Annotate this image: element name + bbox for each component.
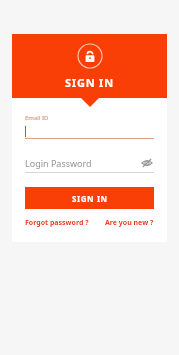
staticText: Login Password <box>25 157 140 169</box>
button[interactable]: Are you new ? <box>105 218 154 228</box>
staticText: Are you new ? <box>105 218 154 228</box>
button[interactable]: SIGN IN <box>25 187 154 209</box>
staticText: Forgot password ? <box>25 218 89 228</box>
staticText: Email ID <box>25 114 49 122</box>
button[interactable] <box>25 125 154 138</box>
button[interactable]: Login Password <box>25 155 154 170</box>
staticText: SIGN IN <box>72 193 108 204</box>
button[interactable]: Forgot password ? <box>25 218 89 228</box>
staticText: SIGN IN <box>65 75 114 90</box>
button[interactable]: Show password <box>140 156 154 170</box>
